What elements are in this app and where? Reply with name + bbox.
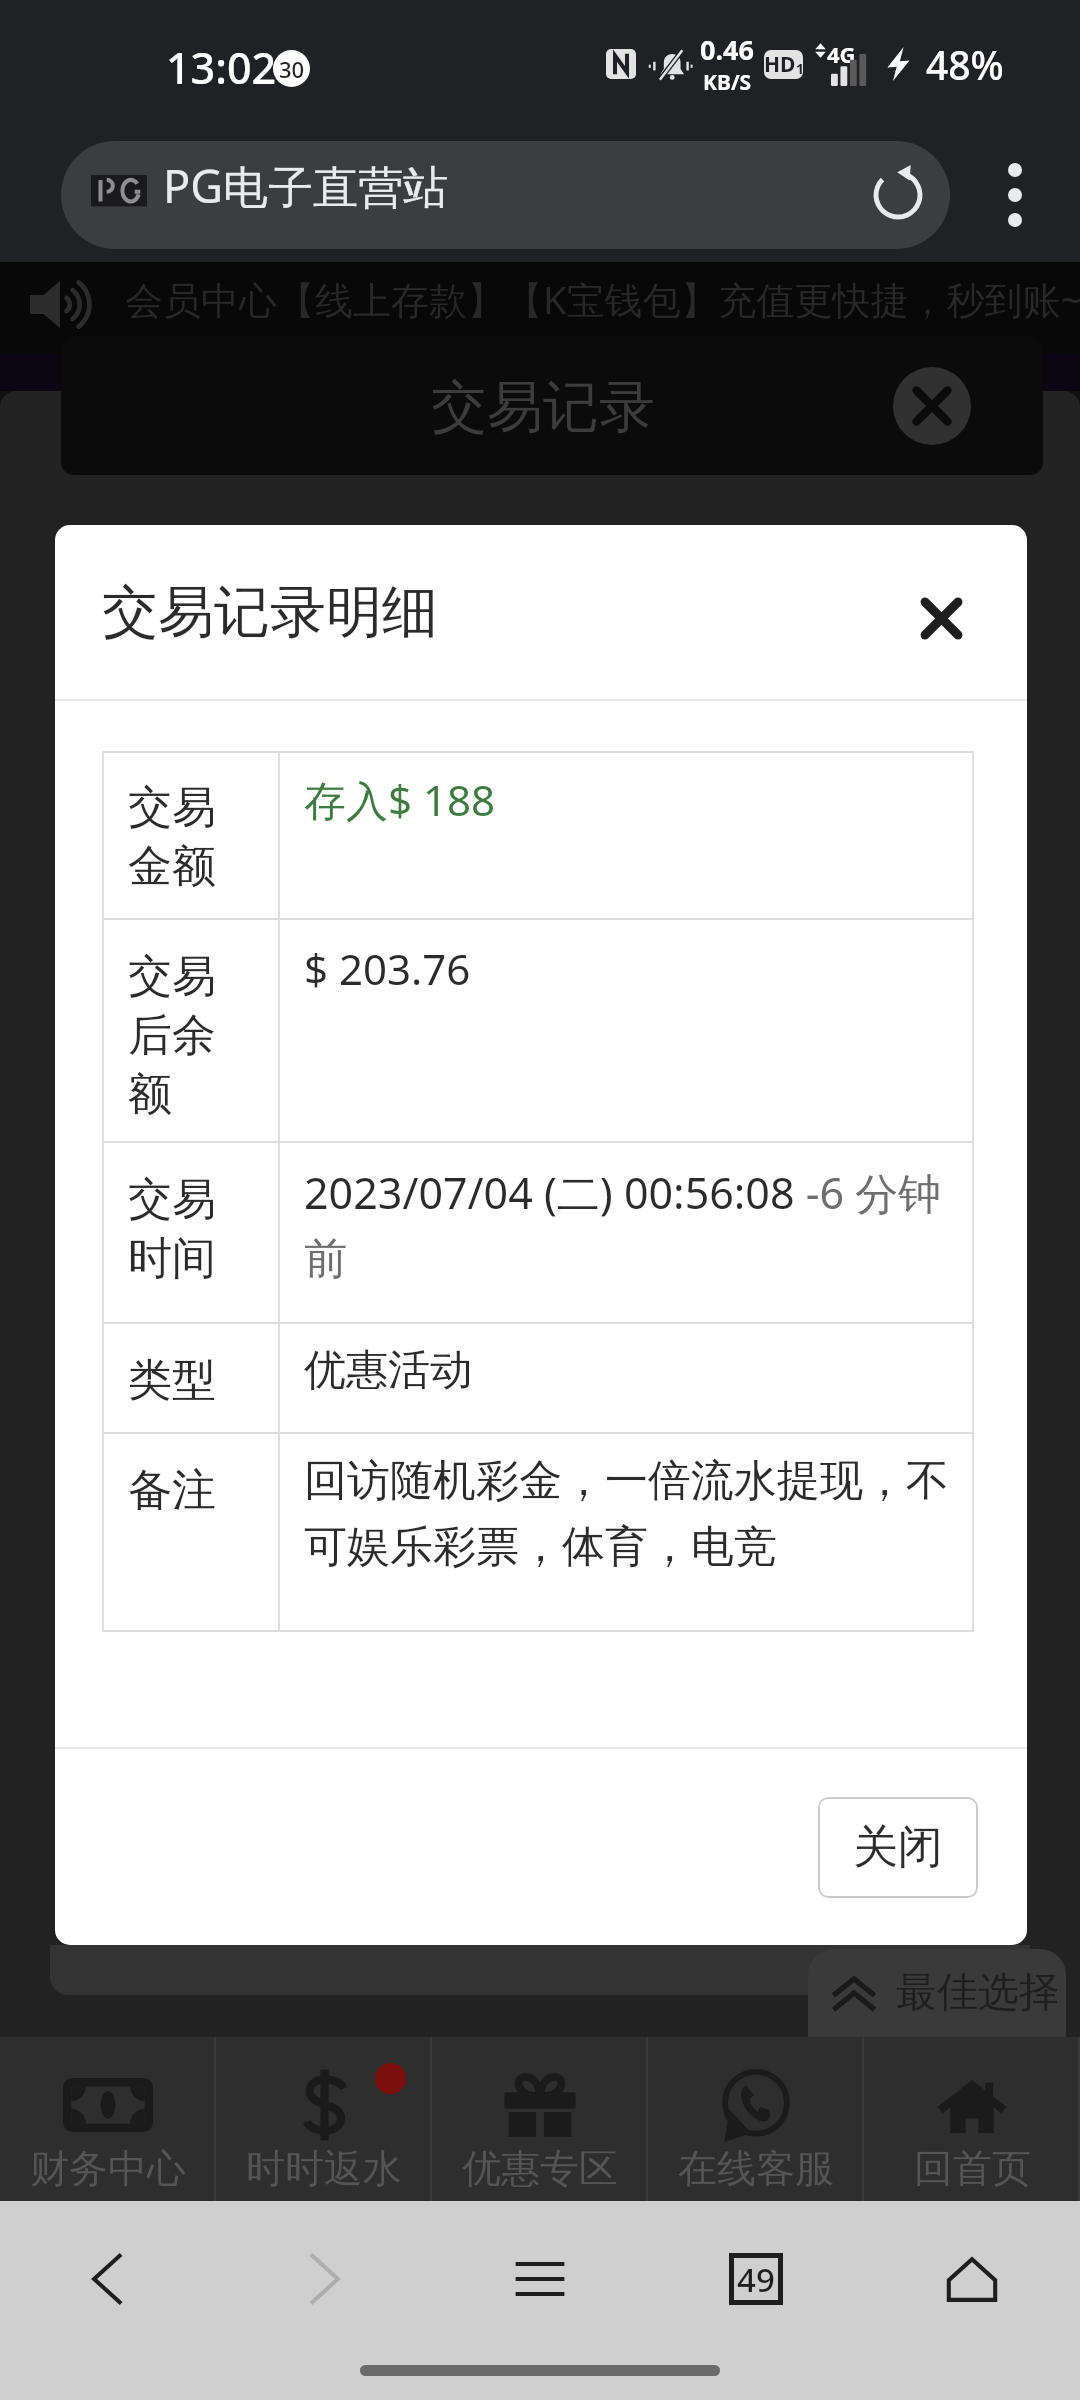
staticText: 优惠活动 xyxy=(304,1344,472,1397)
staticText: 回访随机彩金，一倍流水提现，不可娱乐彩票，体育，电竞 xyxy=(304,1454,962,1574)
button[interactable]: Reload page xyxy=(850,147,946,243)
button[interactable]: 在线客服 xyxy=(648,2037,864,2201)
button[interactable]: More options xyxy=(950,128,1080,262)
staticText: 会员中心【线上存款】【K宝钱包】充值更快捷，秒到账~ xyxy=(125,273,1080,325)
button[interactable]: 回首页 xyxy=(864,2037,1080,2201)
staticText: 48% xyxy=(926,38,1004,91)
button[interactable]: Close transaction record panel xyxy=(893,367,971,445)
button[interactable]: 最佳选择 xyxy=(808,1949,1066,2037)
staticText: 1 xyxy=(796,59,803,78)
staticText: 交易记录明细 xyxy=(102,577,438,648)
staticText: 关闭 xyxy=(853,1819,943,1876)
staticText: 备注 xyxy=(128,1463,216,1518)
button[interactable]: 优惠专区 xyxy=(432,2037,648,2201)
staticText: 13:02 xyxy=(166,38,277,97)
button[interactable]: 财务中心 xyxy=(0,2037,216,2201)
staticText: PG电子直营站 xyxy=(163,155,448,216)
staticText: 交易 金额 xyxy=(128,780,216,894)
button[interactable]: PG电子直营站 xyxy=(61,141,950,249)
staticText: 最佳选择 xyxy=(896,1967,1060,2019)
button[interactable]: Back xyxy=(0,2201,216,2356)
button[interactable]: 时时返水 xyxy=(216,2037,432,2201)
staticText: HD xyxy=(764,50,796,79)
button[interactable]: Close dialog xyxy=(901,578,981,658)
staticText: 交易 时间 xyxy=(128,1172,216,1286)
staticText: 30 xyxy=(279,54,305,84)
button[interactable]: Open tab switcher, 49 tabs xyxy=(648,2201,864,2356)
staticText: 在线客服 xyxy=(678,2144,834,2193)
button[interactable]: 关闭 xyxy=(818,1797,978,1898)
staticText: 时时返水 xyxy=(246,2144,402,2193)
button[interactable]: Home xyxy=(864,2201,1080,2356)
staticText: $ 203.76 xyxy=(304,940,471,997)
staticText: 财务中心 xyxy=(30,2144,186,2193)
staticText: 0.46 xyxy=(700,31,754,68)
staticText: 回首页 xyxy=(914,2144,1031,2193)
staticText: 存入$ 188 xyxy=(304,771,496,828)
staticText: 优惠专区 xyxy=(462,2144,618,2193)
staticText: 交易记录 xyxy=(431,372,655,443)
staticText: 交易 后余 额 xyxy=(128,949,216,1122)
staticText: 2023/07/04 (二) 00:56:08 -6 分钟前 xyxy=(304,1163,962,1286)
staticText: 类型 xyxy=(128,1353,216,1408)
staticText: 4G xyxy=(827,39,856,69)
button[interactable]: Menu xyxy=(432,2201,648,2356)
staticText: KB/S xyxy=(703,68,752,97)
staticText: 49 xyxy=(737,2257,775,2302)
